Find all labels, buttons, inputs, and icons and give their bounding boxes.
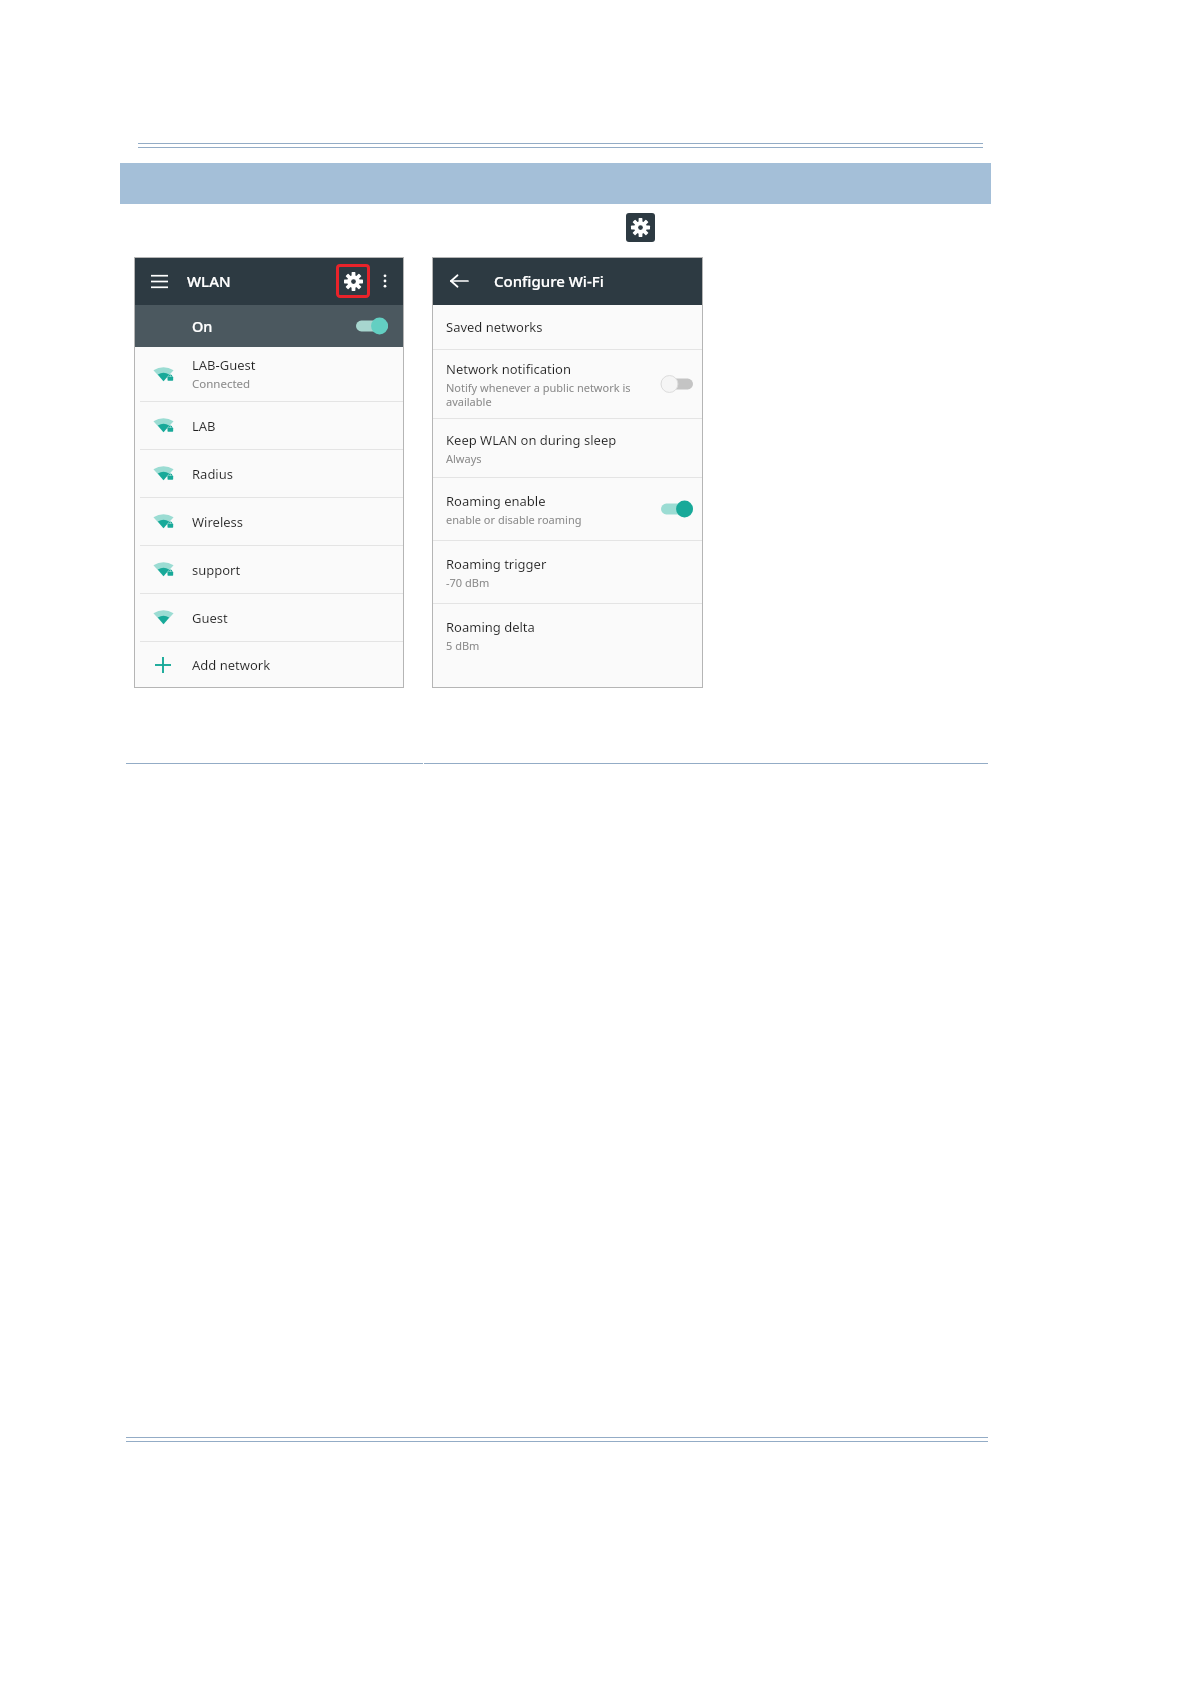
- staticText: enable or disable roaming: [446, 512, 582, 527]
- staticText: Configure Wi-Fi: [494, 271, 604, 291]
- staticText: Keep WLAN on during sleep: [446, 431, 617, 449]
- staticText: On: [192, 316, 213, 336]
- button[interactable]: On: [134, 305, 404, 347]
- button[interactable]: Open navigation drawer: [146, 268, 172, 294]
- button[interactable]: LAB: [134, 402, 404, 449]
- staticText: -70 dBm: [446, 575, 490, 590]
- staticText: Saved networks: [446, 318, 543, 336]
- staticText: 5 dBm: [446, 638, 480, 653]
- button[interactable]: Switch off: [661, 375, 693, 393]
- staticText: Guest: [192, 609, 228, 627]
- staticText: Notify whenever a public network is avai…: [446, 380, 631, 409]
- button[interactable]: Configure Wi-Fi: [336, 264, 370, 298]
- staticText: Network notification: [446, 360, 571, 378]
- button[interactable]: Add network: [134, 642, 404, 688]
- button[interactable]: Roaming trigger: [432, 541, 703, 603]
- button[interactable]: Switch on: [356, 317, 388, 335]
- staticText: Add network: [192, 656, 271, 674]
- button[interactable]: Guest: [134, 594, 404, 641]
- button[interactable]: Roaming delta: [432, 604, 703, 666]
- button[interactable]: Wireless: [134, 498, 404, 545]
- button[interactable]: More options: [374, 270, 396, 292]
- staticText: Roaming enable: [446, 492, 546, 510]
- staticText: LAB-Guest: [192, 356, 256, 374]
- staticText: Roaming delta: [446, 618, 535, 636]
- staticText: support: [192, 561, 241, 579]
- button[interactable]: support: [134, 546, 404, 593]
- button[interactable]: Roaming enable: [432, 478, 703, 540]
- staticText: Roaming trigger: [446, 555, 547, 573]
- staticText: Radius: [192, 465, 233, 483]
- button[interactable]: Back: [446, 268, 472, 294]
- button[interactable]: LAB-Guest: [134, 347, 404, 401]
- staticText: LAB: [192, 417, 216, 435]
- button[interactable]: Saved networks: [432, 305, 703, 349]
- button[interactable]: Radius: [134, 450, 404, 497]
- staticText: Wireless: [192, 513, 244, 531]
- button[interactable]: Keep WLAN on during sleep: [432, 419, 703, 477]
- button[interactable]: Settings: [626, 213, 655, 242]
- staticText: WLAN: [187, 271, 231, 291]
- button[interactable]: Switch on: [661, 500, 693, 518]
- staticText: Always: [446, 451, 482, 466]
- button[interactable]: Network notification: [432, 350, 703, 418]
- staticText: Connected: [192, 376, 251, 392]
